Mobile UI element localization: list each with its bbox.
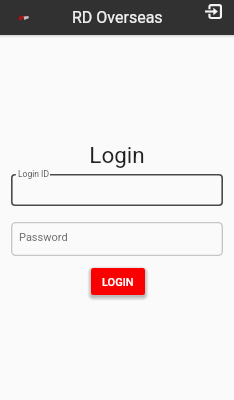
button[interactable]: Password: [11, 222, 223, 256]
staticText: Login: [0, 142, 234, 168]
staticText: Password: [19, 231, 68, 244]
button[interactable]: [11, 174, 223, 206]
staticText: LOGIN: [102, 276, 134, 289]
button[interactable]: Login: [200, 0, 226, 24]
staticText: Login ID: [18, 169, 49, 179]
staticText: RD Overseas: [72, 8, 163, 27]
button[interactable]: LOGIN: [91, 268, 145, 295]
